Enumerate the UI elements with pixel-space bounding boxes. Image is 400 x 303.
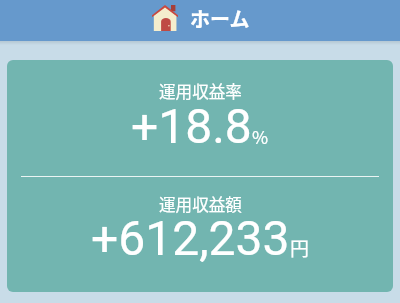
- staticText: %: [252, 124, 269, 149]
- staticText: +612,233: [91, 210, 290, 266]
- staticText: +18.8: [131, 98, 252, 154]
- staticText: 円: [290, 234, 310, 262]
- button[interactable]: ホーム: [0, 0, 400, 41]
- other: ホーム: [152, 5, 178, 31]
- staticText: 運用収益額: [159, 192, 242, 216]
- staticText: 運用収益率: [159, 79, 242, 103]
- button[interactable]: 運用収益率: [7, 60, 393, 292]
- staticText: ホーム: [190, 4, 250, 33]
